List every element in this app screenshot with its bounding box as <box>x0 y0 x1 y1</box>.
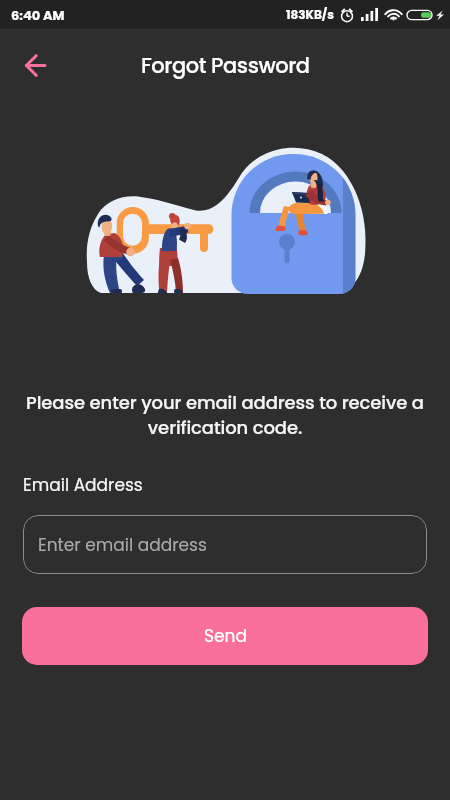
staticText: Enter email address <box>38 533 207 557</box>
staticText: 183KB/s <box>286 6 334 23</box>
staticText: Forgot Password <box>141 51 310 80</box>
button[interactable]: Back <box>14 44 56 86</box>
staticText: Send <box>204 624 247 648</box>
staticText: Email Address <box>23 473 143 497</box>
button[interactable]: Enter email address <box>23 515 427 574</box>
staticText: 6:40 AM <box>11 6 65 24</box>
button[interactable]: Send <box>22 607 428 665</box>
staticText: Please enter your email address to recei… <box>25 390 425 441</box>
